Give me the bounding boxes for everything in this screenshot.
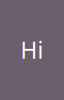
- staticText: Hi: [20, 35, 43, 65]
